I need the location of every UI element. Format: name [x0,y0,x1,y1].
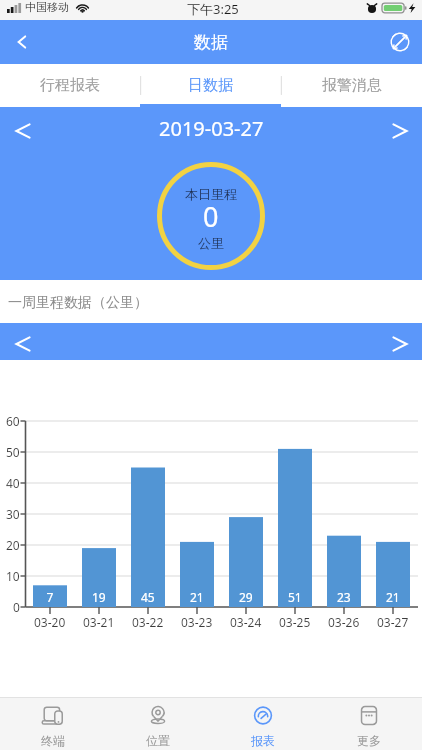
button[interactable]: Refresh [378,20,422,64]
staticText: 一周里程数据（公里） [8,294,148,312]
staticText: 中国移动 [25,0,69,14]
staticText: 行程报表 [40,76,100,95]
button[interactable]: 行程报表 [0,64,140,107]
button[interactable]: 位置 [105,698,210,750]
button[interactable]: 日数据 [140,64,281,107]
button[interactable]: Next week [386,330,414,358]
staticText: 日数据 [188,76,233,95]
staticText: 本日里程 [185,186,237,202]
staticText: 终端 [41,733,65,748]
staticText: 公里 [198,235,224,251]
staticText: 下午3:25 [187,0,239,16]
staticText: 位置 [146,733,170,748]
button[interactable]: 报表 [210,698,316,750]
staticText: 2019-03-27 [159,115,264,142]
button[interactable]: 终端 [0,698,105,750]
button[interactable]: 更多 [316,698,422,750]
button[interactable]: Next day [386,117,414,145]
staticText: 报表 [251,733,275,748]
staticText: 报警消息 [322,76,382,95]
button[interactable]: Back [0,20,44,64]
button[interactable]: Previous week [9,330,37,358]
button[interactable]: 报警消息 [281,64,422,107]
button[interactable]: Previous day [9,117,37,145]
staticText: 0 [203,198,219,235]
staticText: 数据 [194,32,228,53]
staticText: 更多 [357,733,381,748]
